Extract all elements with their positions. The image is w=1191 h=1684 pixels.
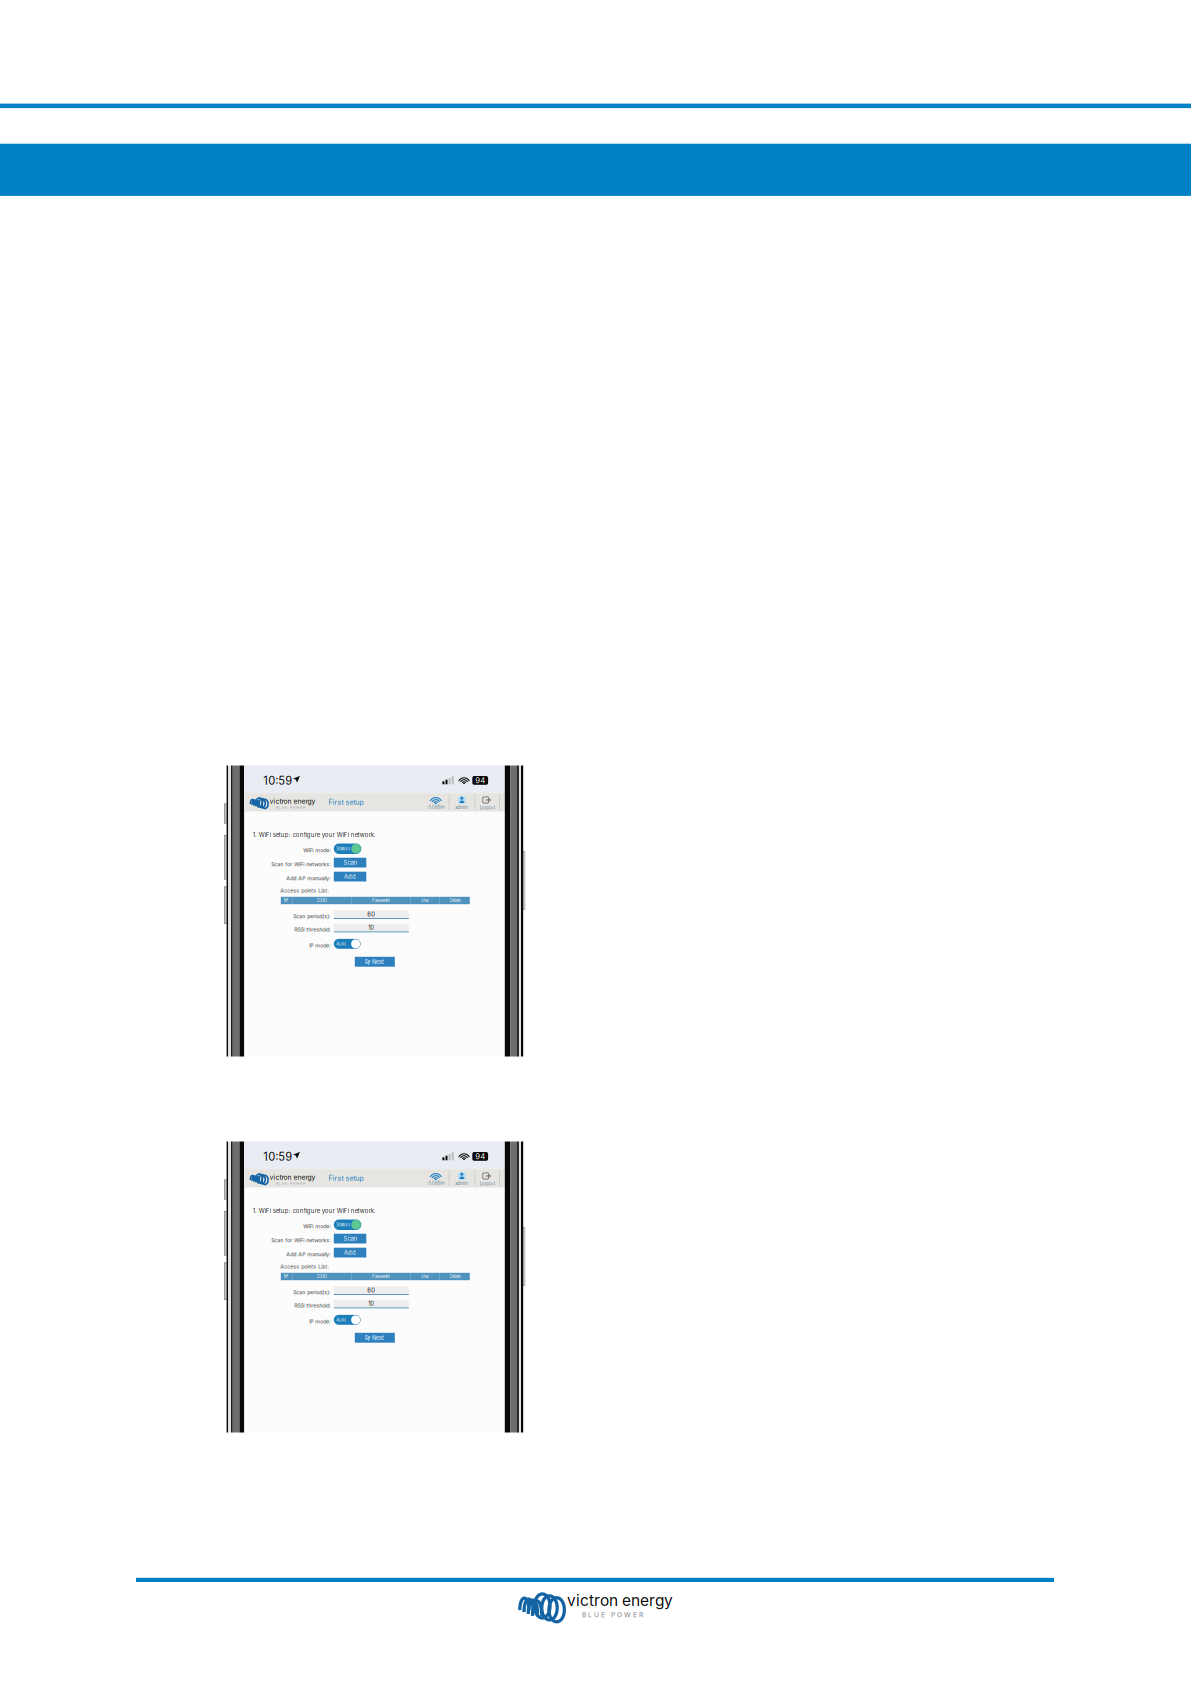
staticText: -50dBm	[427, 804, 445, 810]
staticText: WiFi mode:	[303, 847, 331, 854]
staticText: victron energy	[269, 1173, 315, 1181]
staticText: Use	[422, 898, 429, 903]
staticText: Add AP manually:	[286, 875, 331, 882]
staticText: Next	[372, 1334, 384, 1341]
button[interactable]: Add	[334, 1248, 366, 1257]
button[interactable]: Auto	[334, 939, 361, 949]
staticText: Station	[336, 846, 350, 851]
staticText: First setup	[329, 1174, 364, 1182]
staticText: Add	[344, 873, 356, 880]
staticText: Password	[372, 1274, 390, 1279]
button[interactable]: Logout	[475, 795, 499, 811]
staticText: Scan period(s):	[293, 913, 331, 920]
button[interactable]: Scan	[334, 1234, 366, 1243]
button[interactable]: Auto	[334, 1315, 361, 1325]
staticText: SSID	[317, 898, 327, 903]
staticText: Logout	[480, 805, 495, 810]
button[interactable]: Scan	[334, 858, 366, 867]
staticText: Add	[344, 1249, 356, 1256]
button[interactable]: Add	[334, 872, 366, 881]
staticText: 1. WiFi setup: configure your WiFi netwo…	[253, 1207, 376, 1214]
staticText: Use	[422, 1274, 429, 1279]
staticText: Add AP manually:	[286, 1251, 331, 1258]
staticText: B L U E P O W E R	[276, 806, 305, 809]
button[interactable]: Next	[355, 957, 395, 967]
staticText: 94	[475, 776, 485, 785]
staticText: Password	[372, 898, 390, 903]
button[interactable]: Station	[334, 843, 361, 854]
staticText: -50dBm	[427, 1180, 445, 1186]
staticText: 1. WiFi setup: configure your WiFi netwo…	[253, 831, 376, 838]
staticText: Auto	[336, 941, 346, 946]
staticText: 10:59	[263, 774, 292, 787]
staticText: Delete	[450, 1274, 461, 1279]
staticText: Auto	[336, 1317, 346, 1322]
staticText: First setup	[329, 798, 364, 806]
staticText: B L U E P O W E R	[276, 1182, 305, 1185]
staticText: 10:59	[263, 1150, 292, 1163]
staticText: №	[284, 898, 289, 903]
staticText: SSID	[317, 1274, 327, 1279]
button[interactable]: admin	[450, 795, 474, 811]
staticText: victron energy	[567, 1591, 673, 1610]
staticText: Scan	[344, 1235, 357, 1242]
staticText: admin	[455, 1181, 468, 1186]
staticText: 10	[368, 924, 374, 931]
staticText: B L U E P O W E R	[582, 1611, 643, 1619]
staticText: admin	[455, 805, 468, 810]
button[interactable]: -50dBm	[423, 794, 448, 811]
staticText: IP mode:	[309, 942, 331, 949]
staticText: Access points List:	[280, 887, 329, 894]
staticText: victron energy	[269, 797, 315, 805]
staticText: Access points List:	[280, 1263, 329, 1270]
button[interactable]: Logout	[475, 1171, 499, 1187]
staticText: Next	[372, 958, 384, 965]
button[interactable]: -50dBm	[423, 1170, 448, 1187]
staticText: Scan for WiFi networks:	[271, 1237, 331, 1244]
staticText: 60	[367, 911, 375, 918]
staticText: Scan for WiFi networks:	[271, 861, 331, 868]
staticText: RSSI threshold:	[294, 926, 331, 933]
staticText: №	[284, 1274, 289, 1279]
staticText: RSSI threshold:	[294, 1302, 331, 1309]
staticText: Delete	[450, 898, 461, 903]
staticText: Logout	[480, 1181, 495, 1186]
staticText: WiFi mode:	[303, 1223, 331, 1230]
staticText: Scan	[344, 859, 357, 866]
staticText: IP mode:	[309, 1318, 331, 1325]
staticText: Station	[336, 1222, 350, 1227]
button[interactable]: Station	[334, 1219, 361, 1230]
staticText: Scan period(s):	[293, 1289, 331, 1296]
button[interactable]: admin	[450, 1171, 474, 1187]
staticText: 60	[367, 1287, 375, 1294]
staticText: 10	[368, 1300, 374, 1307]
staticText: 94	[475, 1152, 485, 1161]
button[interactable]: Next	[355, 1333, 395, 1343]
